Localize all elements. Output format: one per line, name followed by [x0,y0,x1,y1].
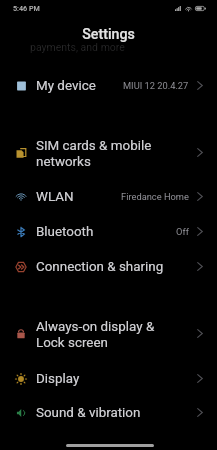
button[interactable]: Always-on display and Lock screen [0,305,217,353]
staticText: WLAN [36,189,74,205]
staticText: Settings [82,26,135,43]
staticText: Connection & sharing [36,259,164,275]
other: Sound and vibration [13,405,29,421]
other: Always-on display and Lock screen [13,326,29,342]
staticText: Bluetooth [36,224,94,240]
staticText: Off [176,226,189,237]
staticText: SIM cards & mobile [36,138,152,154]
other: SIM cards and mobile networks [13,145,29,161]
other: Connection and sharing [13,259,29,275]
button[interactable]: WLAN [0,179,217,214]
other: Display [13,371,29,387]
staticText: 5:46 PM [13,4,40,12]
button[interactable]: Connection and sharing [0,249,217,284]
staticText: Always-on display & [36,319,155,335]
staticText: Lock screen [36,335,108,351]
staticText: Sound & vibration [36,405,141,421]
button[interactable]: Sound and vibration [0,395,217,430]
other: Bluetooth [13,224,29,240]
other: WLAN [13,189,29,205]
staticText: My device [36,78,96,94]
button[interactable]: Display [0,361,217,396]
staticText: networks [36,154,91,170]
button[interactable]: SIM cards and mobile networks [0,124,217,172]
staticText: Firedance Home [121,191,189,202]
staticText: MIUI 12 20.4.27 [123,80,189,91]
button[interactable]: Bluetooth [0,214,217,249]
button[interactable]: My device [0,68,217,103]
staticText: Display [36,371,80,387]
staticText: payments, and more [30,41,125,53]
other: My device [13,78,29,94]
